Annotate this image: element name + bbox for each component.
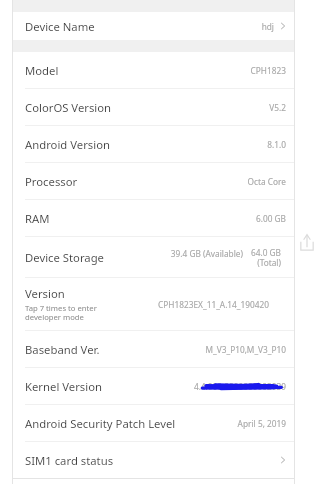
button[interactable]: Processor — [12, 163, 295, 199]
staticText: 4.4.000.0000000002039 — [193, 381, 286, 392]
staticText: Processor — [25, 174, 78, 189]
staticText: 64.0 GB (Total) — [250, 247, 281, 268]
button[interactable]: Share — [300, 233, 314, 254]
staticText: Android Version — [25, 137, 110, 152]
button[interactable]: Android Version — [12, 126, 295, 162]
button[interactable]: Model — [12, 52, 295, 88]
button[interactable]: Android Security Patch Level — [12, 405, 295, 441]
staticText: Version — [25, 286, 65, 301]
staticText: RAM — [25, 211, 50, 226]
staticText: SIM1 card status — [25, 453, 114, 468]
button[interactable]: Device Name — [12, 12, 295, 40]
staticText: 6.00 GB — [255, 213, 286, 224]
staticText: V5.2 — [269, 102, 286, 113]
staticText: CPH1823EX_11_A.14_190420 — [158, 299, 269, 310]
button[interactable]: SIM1 card status — [12, 442, 295, 478]
staticText: ColorOS Version — [25, 100, 112, 115]
button[interactable]: ColorOS Version — [12, 89, 295, 125]
staticText: 8.1.0 — [267, 139, 286, 150]
staticText: CPH1823 — [250, 65, 286, 76]
staticText: Device Storage — [25, 250, 104, 265]
button[interactable]: Kernel Version — [12, 368, 295, 404]
staticText: April 5, 2019 — [237, 418, 286, 429]
button[interactable]: RAM — [12, 200, 295, 236]
button[interactable]: Device Storage — [12, 237, 295, 277]
staticText: hdj — [261, 21, 274, 32]
staticText: Model — [25, 63, 59, 78]
staticText: Kernel Version — [25, 379, 102, 394]
staticText: Baseband Ver. — [25, 342, 100, 357]
staticText: Android Security Patch Level — [25, 416, 176, 431]
staticText: M_V3_P10,M_V3_P10 — [205, 344, 286, 355]
button[interactable]: Version — [12, 278, 295, 330]
staticText: Device Name — [25, 19, 95, 34]
staticText: 39.4 GB (Available) — [170, 248, 243, 259]
staticText: Tap 7 times to enter developer mode — [25, 303, 97, 323]
button[interactable]: Baseband Ver. — [12, 331, 295, 367]
staticText: Octa Core — [247, 176, 286, 187]
